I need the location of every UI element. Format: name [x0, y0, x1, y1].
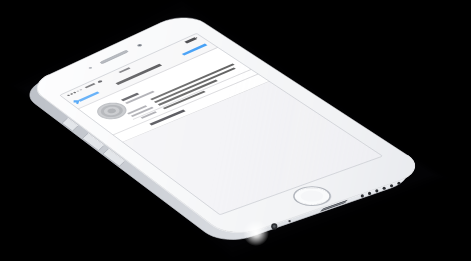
button[interactable]: iPhone device mockup showing invitation … — [0, 0, 471, 261]
